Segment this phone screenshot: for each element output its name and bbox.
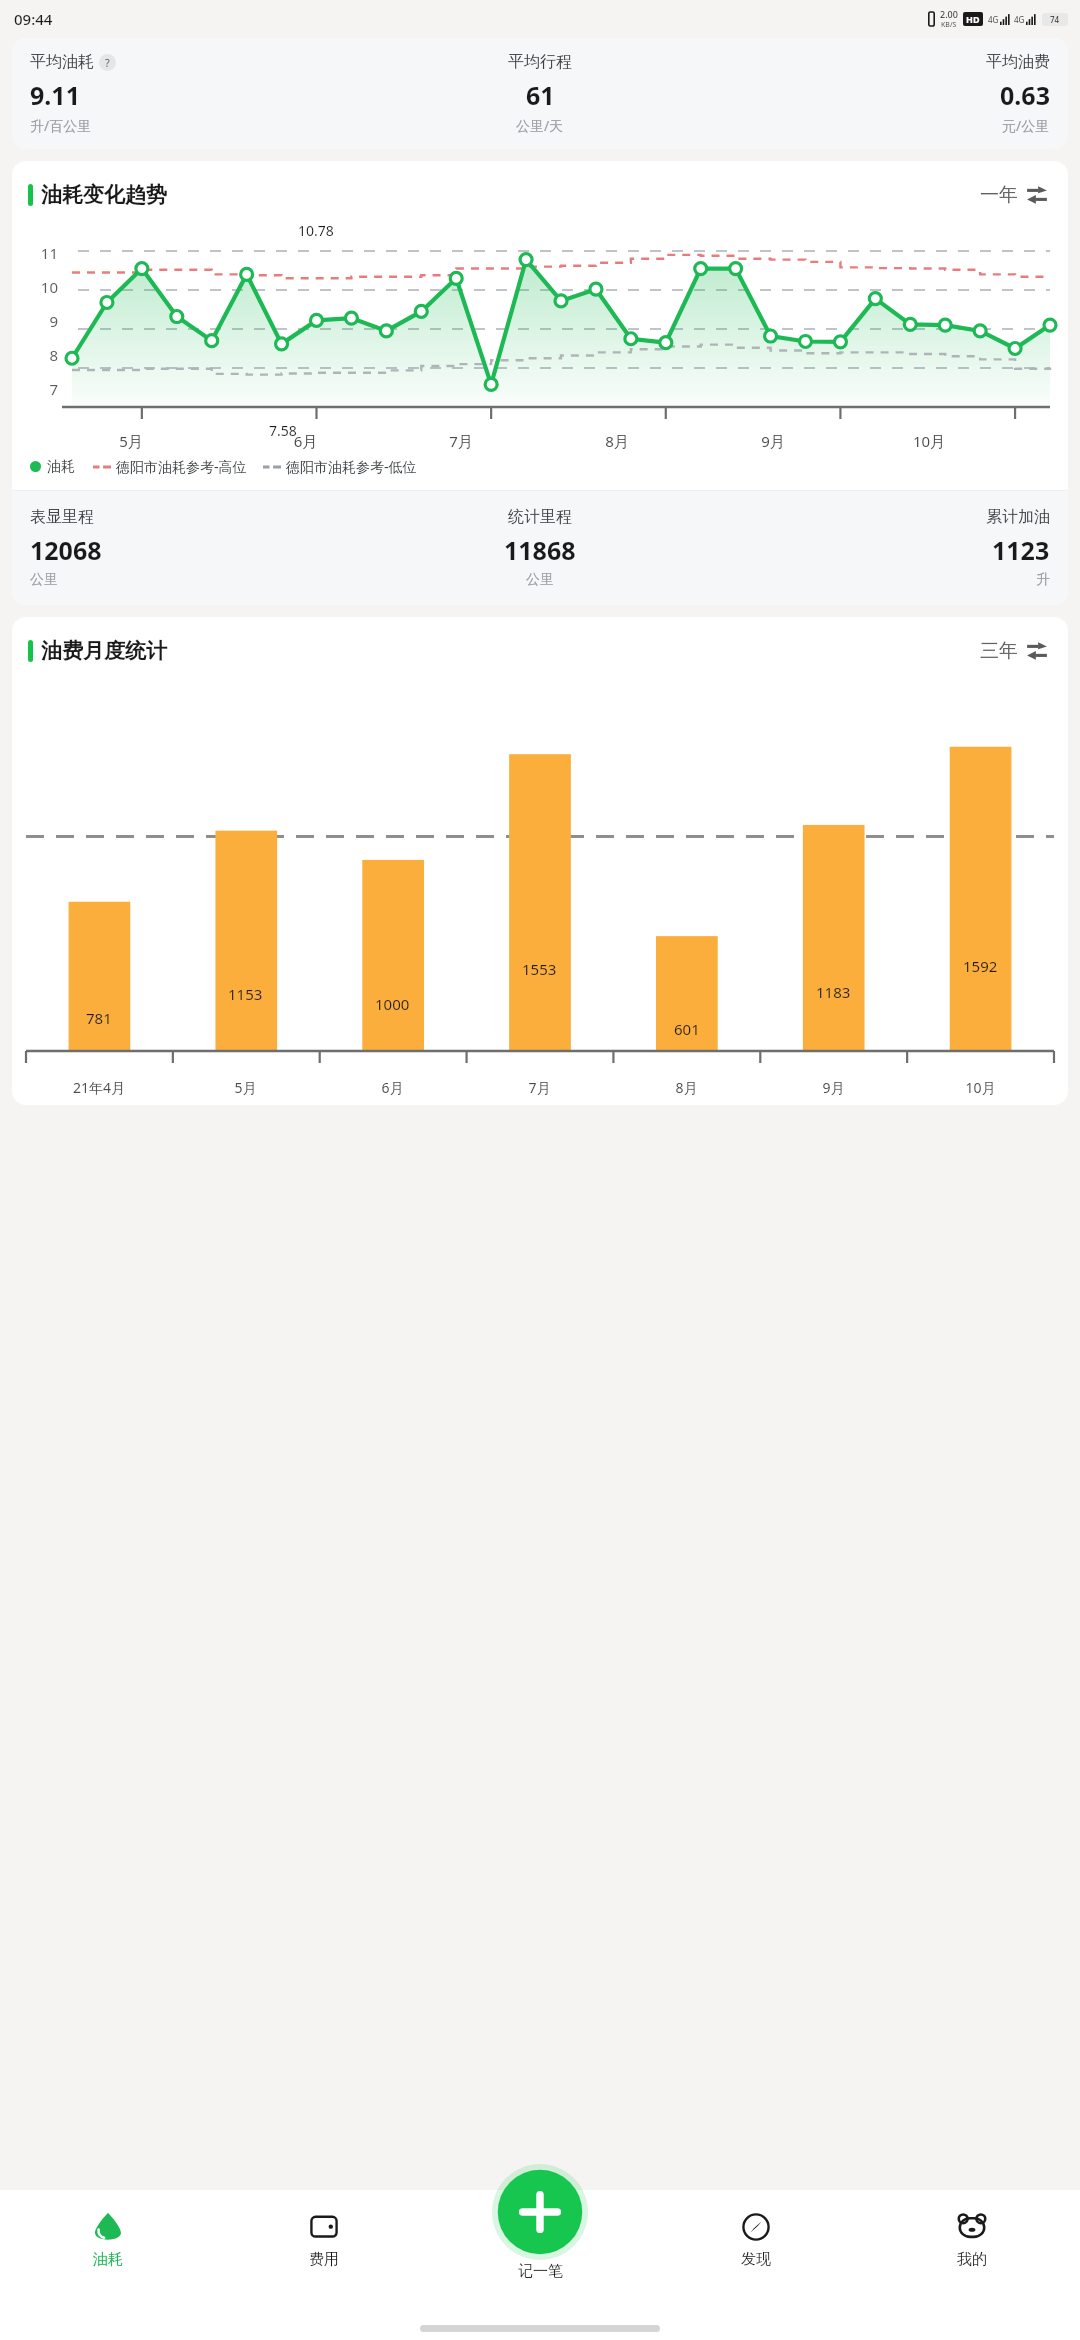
staticText: 6月 bbox=[319, 1078, 466, 1097]
staticText: 5月 bbox=[34, 431, 228, 451]
staticText: 4G bbox=[1014, 14, 1025, 25]
staticText: 2.00 bbox=[940, 8, 958, 20]
staticText: 10月 bbox=[851, 431, 1007, 451]
staticText: 7 bbox=[26, 379, 58, 399]
button[interactable]: 三年 bbox=[976, 635, 1052, 667]
button[interactable]: 油耗 bbox=[0, 2204, 216, 2275]
other: 切换 bbox=[1026, 184, 1048, 206]
button[interactable]: 一年 bbox=[976, 179, 1052, 211]
staticText: 累计加油 bbox=[986, 507, 1050, 527]
staticText: 10.78 bbox=[298, 221, 334, 240]
staticText: 统计里程 bbox=[508, 507, 572, 527]
staticText: 10月 bbox=[907, 1078, 1054, 1097]
staticText: 8月 bbox=[539, 431, 695, 451]
staticText: 德阳市油耗参考-低位 bbox=[286, 457, 417, 476]
staticText: 1123 bbox=[992, 533, 1050, 567]
staticText: 11868 bbox=[504, 533, 576, 567]
button[interactable]: 帮助 bbox=[99, 54, 116, 71]
staticText: 781 bbox=[86, 1008, 112, 1028]
button[interactable]: 费用 bbox=[216, 2204, 432, 2275]
staticText: 公里 bbox=[526, 571, 554, 589]
staticText: 10 bbox=[26, 277, 58, 297]
staticText: 平均油费 bbox=[986, 52, 1050, 72]
staticText: 61 bbox=[526, 78, 555, 112]
staticText: 4G bbox=[988, 14, 999, 25]
staticText: 1592 bbox=[963, 956, 998, 976]
staticText: 7月 bbox=[466, 1078, 613, 1097]
staticText: 发现 bbox=[741, 2250, 771, 2269]
staticText: 油耗变化趋势 bbox=[41, 182, 167, 208]
staticText: 9月 bbox=[695, 431, 851, 451]
button[interactable]: 我的 bbox=[864, 2204, 1080, 2275]
staticText: 一年 bbox=[980, 183, 1018, 207]
button[interactable]: 发现 bbox=[648, 2204, 864, 2275]
staticText: 油耗 bbox=[93, 2250, 123, 2269]
staticText: 1553 bbox=[522, 959, 557, 979]
staticText: 8 bbox=[26, 345, 58, 365]
staticText: 德阳市油耗参考-高位 bbox=[116, 457, 247, 476]
staticText: 公里/天 bbox=[516, 116, 564, 135]
staticText: 74 bbox=[1050, 14, 1060, 25]
staticText: 记一笔 bbox=[518, 2262, 563, 2281]
staticText: 平均油耗 bbox=[30, 52, 94, 72]
staticText: 8月 bbox=[613, 1078, 760, 1097]
other: 切换 bbox=[1026, 640, 1048, 662]
staticText: 公里 bbox=[30, 571, 58, 589]
staticText: 费用 bbox=[309, 2250, 339, 2269]
staticText: 6月 bbox=[228, 431, 383, 451]
staticText: KB/S bbox=[941, 20, 957, 30]
staticText: 油耗 bbox=[47, 458, 75, 476]
staticText: 表显里程 bbox=[30, 507, 94, 527]
staticText: 09:44 bbox=[14, 9, 53, 29]
button[interactable]: 表显里程 bbox=[12, 491, 1068, 605]
staticText: HD bbox=[966, 13, 980, 25]
staticText: 升 bbox=[1036, 571, 1050, 589]
staticText: 7月 bbox=[383, 431, 539, 451]
staticText: 1183 bbox=[816, 982, 851, 1002]
staticText: 元/公里 bbox=[1002, 116, 1050, 135]
staticText: ? bbox=[105, 55, 110, 70]
staticText: 升/百公里 bbox=[30, 116, 92, 135]
staticText: 9 bbox=[26, 311, 58, 331]
staticText: 1153 bbox=[228, 984, 263, 1004]
staticText: 7.58 bbox=[269, 421, 297, 440]
staticText: 三年 bbox=[980, 639, 1018, 663]
button[interactable]: 平均油耗 bbox=[12, 38, 1068, 149]
staticText: 油费月度统计 bbox=[41, 638, 167, 664]
staticText: 1000 bbox=[375, 994, 410, 1014]
staticText: 我的 bbox=[957, 2250, 987, 2269]
staticText: 0.63 bbox=[1000, 78, 1050, 112]
button[interactable]: 记一笔 bbox=[492, 2164, 588, 2260]
staticText: 5月 bbox=[172, 1078, 319, 1097]
staticText: 11 bbox=[26, 243, 58, 263]
staticText: 9.11 bbox=[30, 78, 80, 112]
staticText: 21年4月 bbox=[26, 1078, 172, 1097]
staticText: 9月 bbox=[760, 1078, 907, 1097]
staticText: 601 bbox=[674, 1019, 700, 1039]
staticText: 12068 bbox=[30, 533, 102, 567]
staticText: 平均行程 bbox=[508, 52, 572, 72]
